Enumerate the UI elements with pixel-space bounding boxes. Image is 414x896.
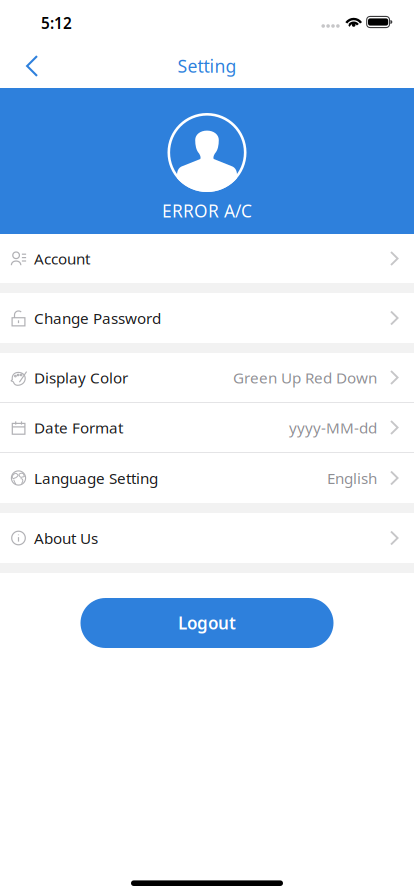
staticText: Logout xyxy=(178,611,236,635)
button[interactable]: Display Color xyxy=(0,353,414,403)
button[interactable]: Logout xyxy=(80,598,333,648)
button[interactable]: Language Setting xyxy=(0,453,414,503)
button[interactable]: Change Password xyxy=(0,293,414,343)
staticText: Display Color xyxy=(34,367,128,388)
staticText: About Us xyxy=(34,528,98,548)
staticText: Change Password xyxy=(34,308,161,328)
staticText: English xyxy=(327,468,377,488)
staticText: Green Up Red Down xyxy=(233,367,377,388)
staticText: yyyy-MM-dd xyxy=(289,417,377,438)
button[interactable]: About Us xyxy=(0,513,414,563)
button[interactable]: Account xyxy=(0,234,414,283)
button[interactable]: Back xyxy=(0,44,52,88)
staticText: Language Setting xyxy=(34,468,158,488)
staticText: Account xyxy=(34,248,90,269)
staticText: ERROR A/C xyxy=(162,199,252,223)
staticText: Setting xyxy=(177,54,236,78)
staticText: 5:12 xyxy=(41,13,72,33)
staticText: Date Format xyxy=(34,417,123,438)
button[interactable]: Date Format xyxy=(0,403,414,453)
